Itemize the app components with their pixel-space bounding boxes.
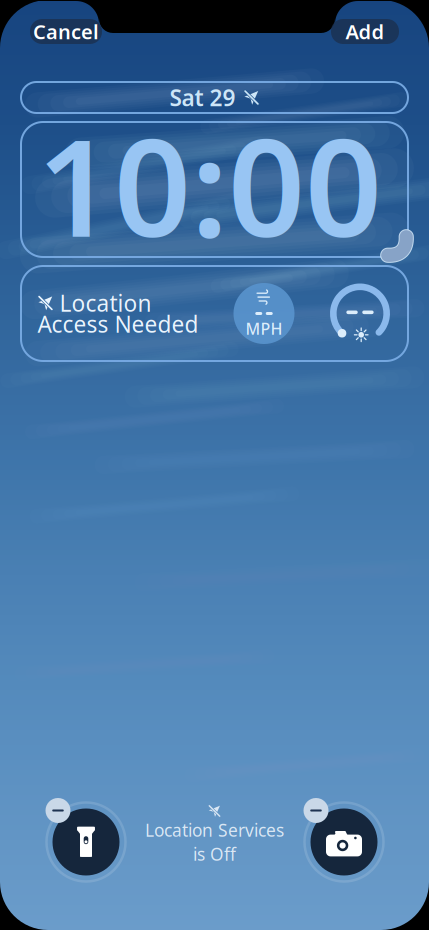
staticText: Location <box>59 288 151 318</box>
button[interactable]: Clock widget <box>21 122 408 257</box>
staticText: Sat 29 <box>169 82 235 112</box>
staticText: Add <box>345 18 384 45</box>
staticText: MPH <box>245 318 282 339</box>
staticText: Access Needed <box>37 309 198 339</box>
staticText: Cancel <box>33 18 99 45</box>
button[interactable]: Flashlight <box>42 798 130 886</box>
staticText: is Off <box>193 842 236 865</box>
button[interactable]: Sat 29 <box>21 82 408 113</box>
staticText: 10:00 <box>37 95 382 274</box>
button[interactable]: Weather widget <box>21 266 408 361</box>
staticText: Location Services <box>145 818 284 841</box>
button[interactable]: Camera <box>300 798 388 886</box>
button[interactable]: Add <box>331 19 399 44</box>
button[interactable]: Cancel <box>30 19 102 44</box>
